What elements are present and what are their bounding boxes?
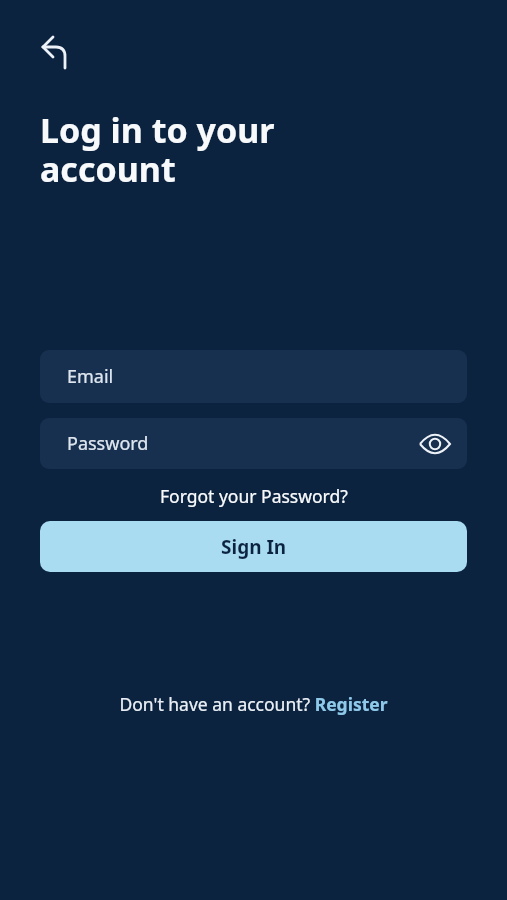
button[interactable] <box>415 424 455 464</box>
button[interactable]: Email <box>40 350 467 403</box>
staticText: Don't have an account? Register <box>119 692 388 716</box>
button[interactable]: Forgot your Password? <box>40 484 467 508</box>
staticText: Sign In <box>221 534 287 560</box>
button[interactable] <box>40 28 84 72</box>
button[interactable]: Sign In <box>40 521 467 572</box>
button[interactable]: Don't have an account? Register <box>40 692 467 716</box>
staticText: Forgot your Password? <box>160 484 348 508</box>
button[interactable]: Password <box>40 418 467 469</box>
staticText: Password <box>67 431 149 456</box>
staticText: Log in to your account <box>40 107 275 192</box>
staticText: Email <box>67 364 114 389</box>
